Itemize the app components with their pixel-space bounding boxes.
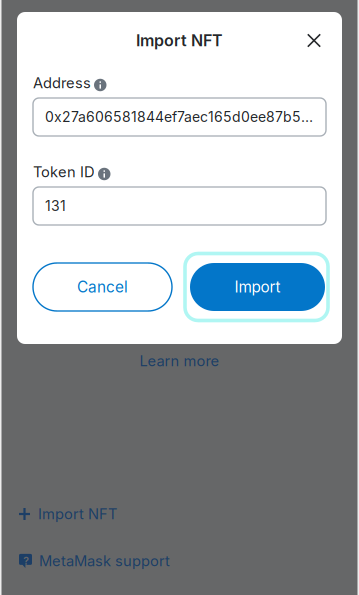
- staticText: Learn more: [139, 352, 219, 370]
- staticText: Import: [234, 278, 280, 296]
- staticText: Address: [33, 74, 91, 92]
- staticText: 131: [45, 197, 66, 214]
- staticText: 0x27a606581844ef7aec165d0ee87b5c...: [45, 108, 314, 125]
- staticText: ?: [23, 554, 29, 567]
- staticText: Cancel: [77, 278, 128, 296]
- button[interactable]: Import: [190, 263, 325, 311]
- button[interactable]: Import NFT: [0, 494, 359, 534]
- button[interactable]: Close: [294, 27, 326, 59]
- staticText: Import NFT: [38, 505, 117, 523]
- staticText: Token ID: [33, 163, 95, 181]
- button[interactable]: ?: [0, 541, 359, 581]
- button[interactable]: Cancel: [33, 263, 172, 311]
- button[interactable]: Learn more: [0, 352, 359, 370]
- staticText: Import NFT: [136, 31, 223, 50]
- staticText: MetaMask support: [39, 552, 170, 570]
